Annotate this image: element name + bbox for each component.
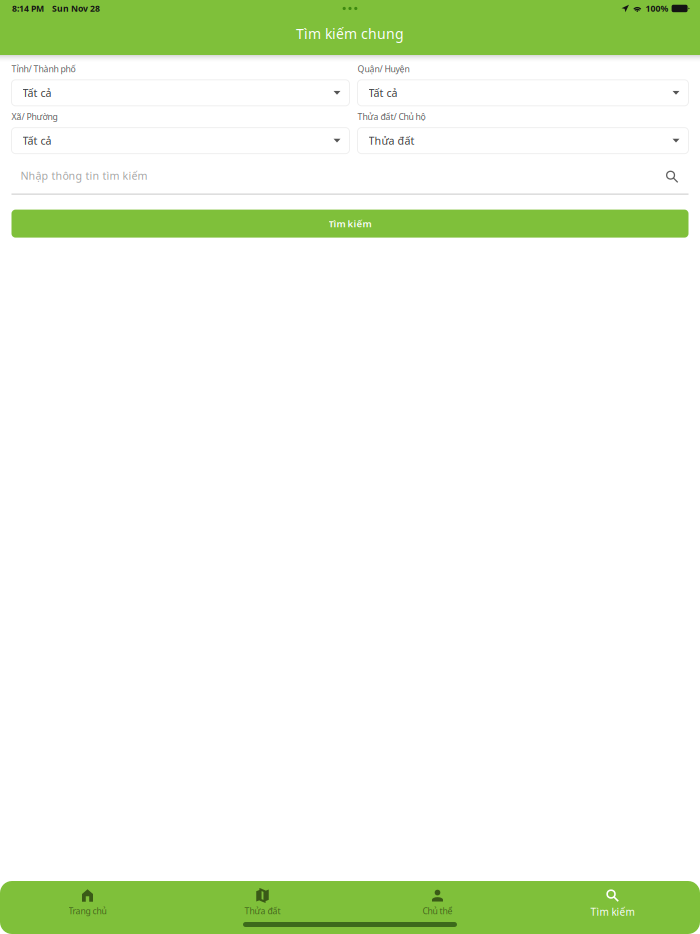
button[interactable]: Thửa đất [175,881,350,921]
staticText: Thửa đất [368,133,414,148]
button[interactable]: Chủ thể [350,881,525,921]
staticText: Chủ thể [422,905,452,917]
staticText: 8:14 PM [12,3,44,14]
staticText: Thửa đất [244,905,280,917]
staticText: Thửa đất/ Chủ hộ [357,111,425,123]
staticText: Tất cả [22,133,51,148]
button[interactable]: Tìm kiếm [525,881,700,921]
staticText: Tìm kiếm chung [296,24,404,43]
staticText: Xã/ Phường [11,111,57,123]
staticText: 100% [646,3,669,14]
staticText: Sun Nov 28 [52,3,100,14]
staticText: Tìm kiếm [590,905,634,919]
button[interactable]: Tất cả [11,80,349,106]
button[interactable]: Trang chủ [0,881,175,921]
staticText: Trang chủ [68,905,106,917]
button[interactable]: Tìm kiếm [11,210,688,238]
button[interactable]: Thửa đất [357,128,688,154]
staticText: Tất cả [368,85,397,100]
button[interactable]: Tất cả [11,128,349,154]
staticText: Tìm kiếm [328,217,371,230]
staticText: Nhập thông tin tìm kiếm [20,168,147,183]
staticText: Tất cả [22,85,51,100]
staticText: Quận/ Huyện [357,63,409,75]
button[interactable]: Search [665,168,688,183]
button[interactable]: Tất cả [357,80,688,106]
staticText: Tỉnh/ Thành phố [11,63,75,75]
